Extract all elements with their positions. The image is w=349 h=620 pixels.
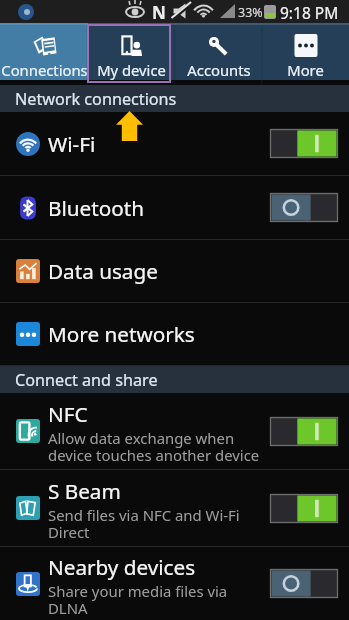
- button[interactable]: Data usage: [0, 240, 349, 302]
- staticText: Accounts: [187, 60, 251, 80]
- staticText: N: [152, 1, 166, 24]
- staticText: Wi-Fi: [48, 130, 96, 158]
- button[interactable]: On: [270, 129, 338, 158]
- button[interactable]: Wi-Fi: [0, 112, 349, 175]
- button[interactable]: S Beam: [0, 470, 349, 546]
- staticText: Allow data exchange when device touches …: [48, 428, 261, 466]
- button[interactable]: My device: [88, 23, 175, 80]
- button[interactable]: Bluetooth: [0, 176, 349, 239]
- button[interactable]: Connections: [0, 23, 88, 80]
- staticText: More networks: [48, 320, 195, 348]
- button[interactable]: On: [270, 494, 338, 523]
- button[interactable]: Accounts: [175, 23, 262, 80]
- staticText: Send files via NFC and Wi-Fi Direct: [48, 505, 261, 543]
- button[interactable]: Nearby devices: [0, 547, 349, 620]
- button[interactable]: On: [270, 417, 338, 446]
- staticText: My device: [97, 60, 166, 80]
- staticText: Connections: [1, 60, 88, 80]
- staticText: 33%: [238, 4, 263, 21]
- staticText: Network connections: [15, 88, 177, 110]
- staticText: Data usage: [48, 257, 158, 285]
- button[interactable]: Off: [270, 569, 338, 598]
- button[interactable]: Off: [270, 193, 338, 222]
- staticText: Bluetooth: [48, 194, 144, 222]
- staticText: More: [287, 60, 324, 80]
- staticText: Share your media files via DLNA: [48, 581, 261, 619]
- staticText: NFC: [48, 400, 88, 428]
- button[interactable]: More networks: [0, 303, 349, 365]
- staticText: S Beam: [48, 477, 121, 505]
- button[interactable]: More: [262, 23, 349, 80]
- staticText: Connect and share: [15, 369, 158, 391]
- button[interactable]: NFC: [0, 393, 349, 469]
- staticText: 9:18 PM: [280, 2, 339, 23]
- staticText: Nearby devices: [48, 553, 196, 581]
